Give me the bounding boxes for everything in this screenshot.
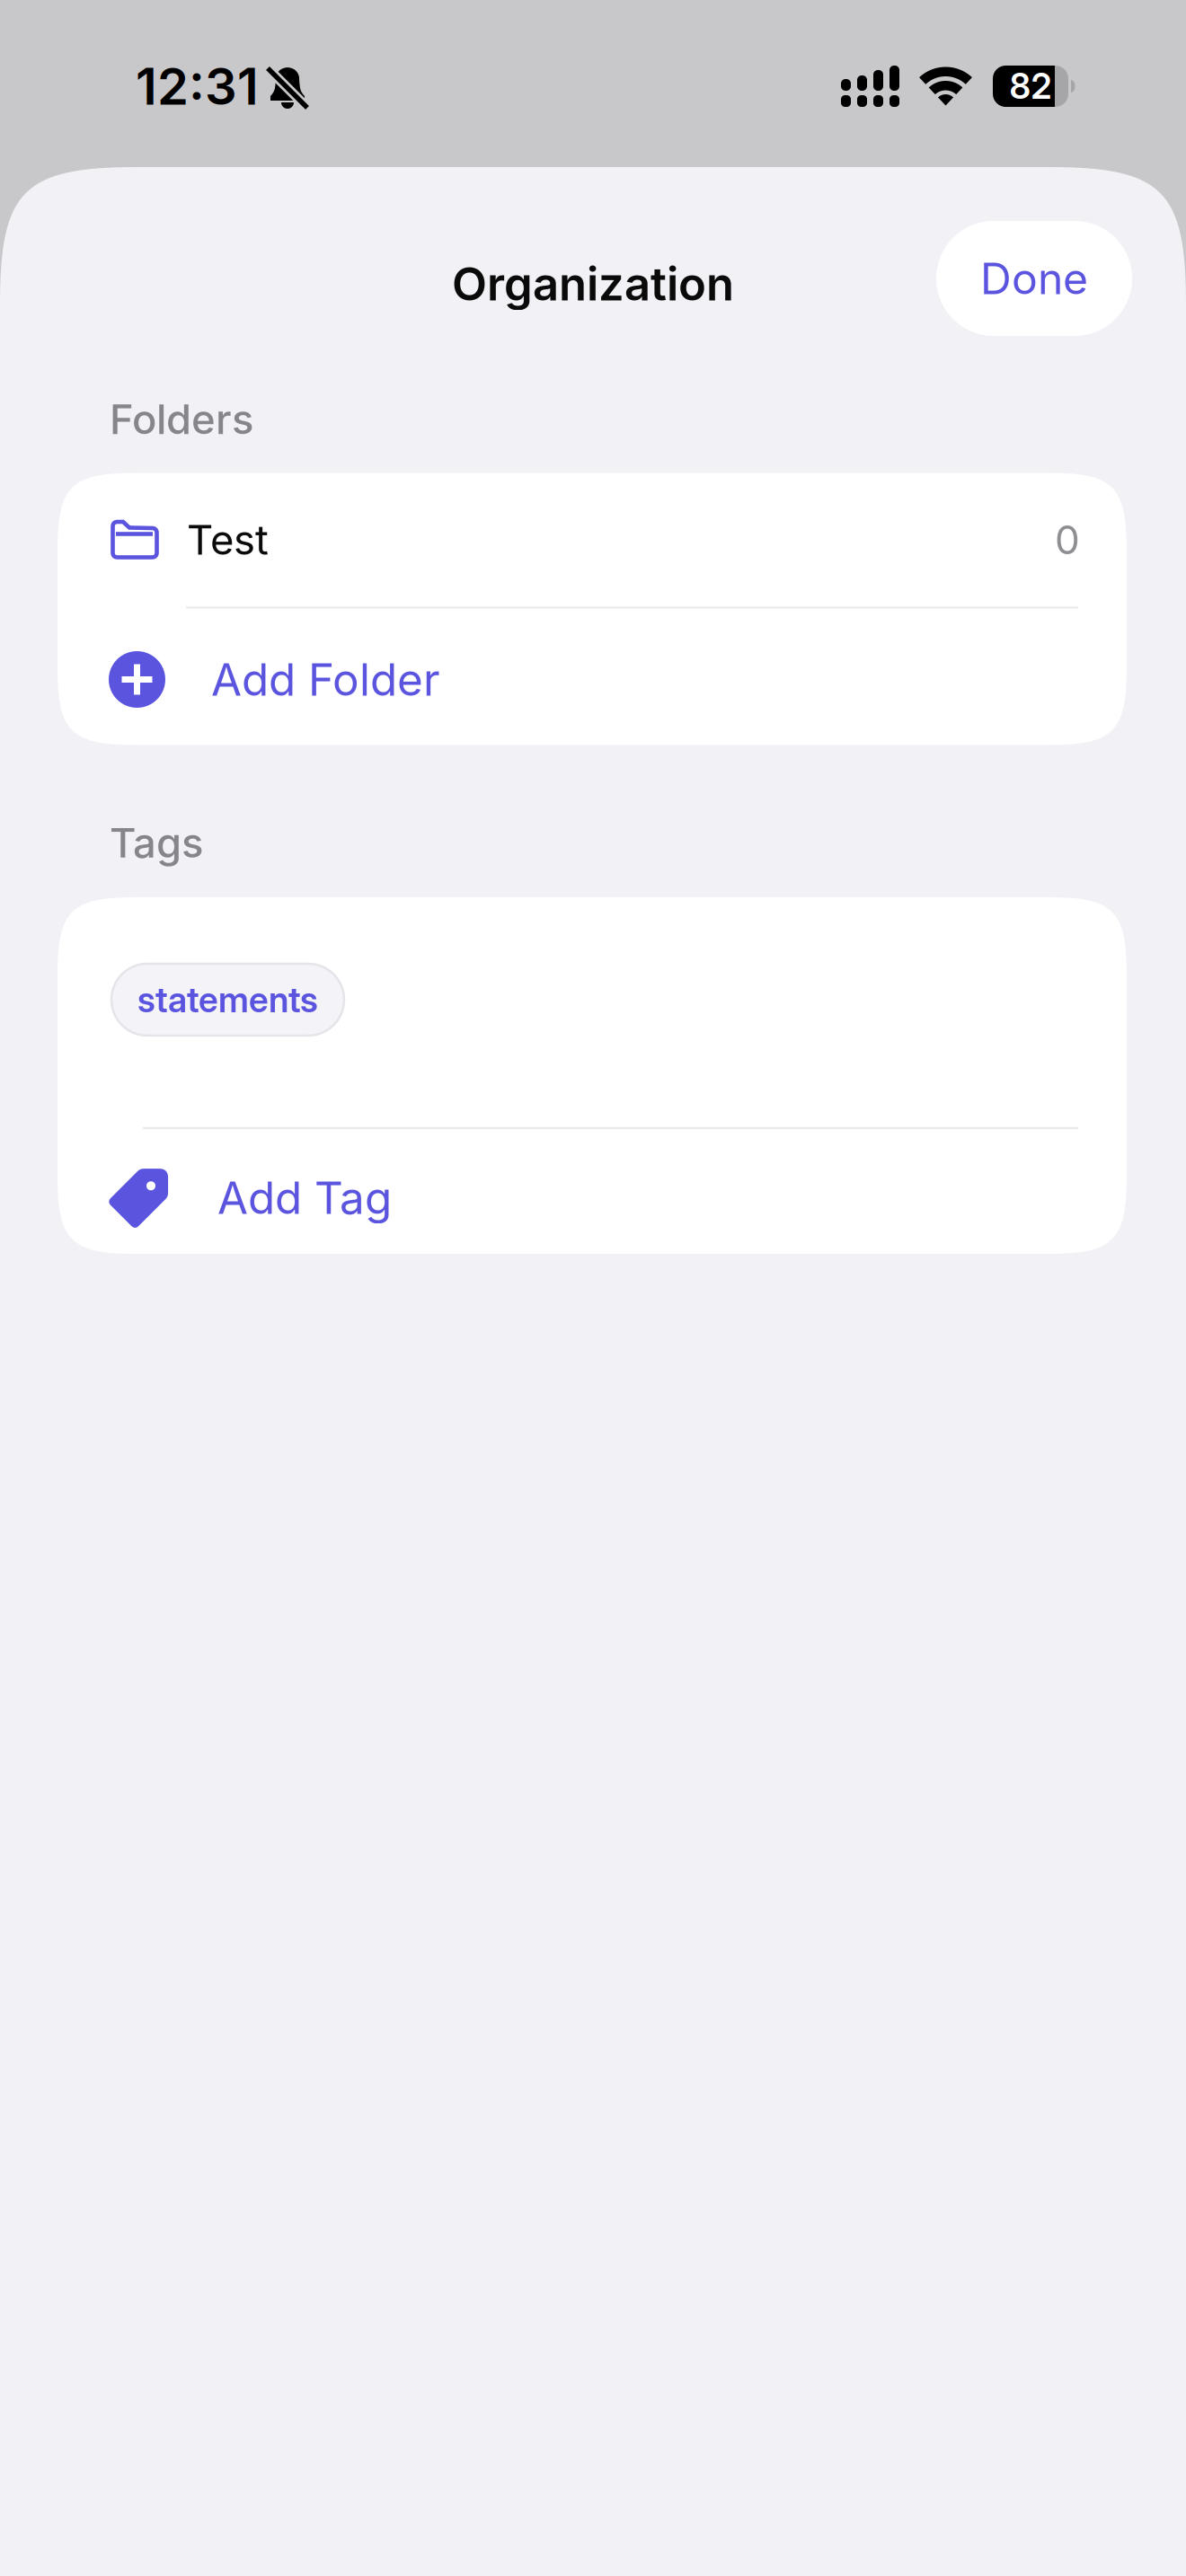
staticText: statements: [137, 979, 318, 1020]
staticText: Add Tag: [217, 1172, 392, 1224]
staticText: Organization: [452, 257, 734, 311]
staticText: Done: [980, 253, 1088, 304]
button[interactable]: Add Folder: [58, 609, 1127, 745]
staticText: Add Folder: [211, 653, 440, 706]
staticText: Test: [187, 516, 269, 564]
staticText: 12:31: [136, 57, 259, 116]
staticText: Tags: [110, 819, 203, 867]
staticText: 82: [1009, 66, 1052, 107]
button[interactable]: Done: [936, 221, 1132, 336]
staticText: 0: [1055, 516, 1080, 563]
staticText: Folders: [110, 395, 253, 443]
button[interactable]: Test: [58, 473, 1127, 607]
button[interactable]: Add Tag: [58, 1129, 1127, 1254]
button[interactable]: statements: [111, 964, 344, 1036]
